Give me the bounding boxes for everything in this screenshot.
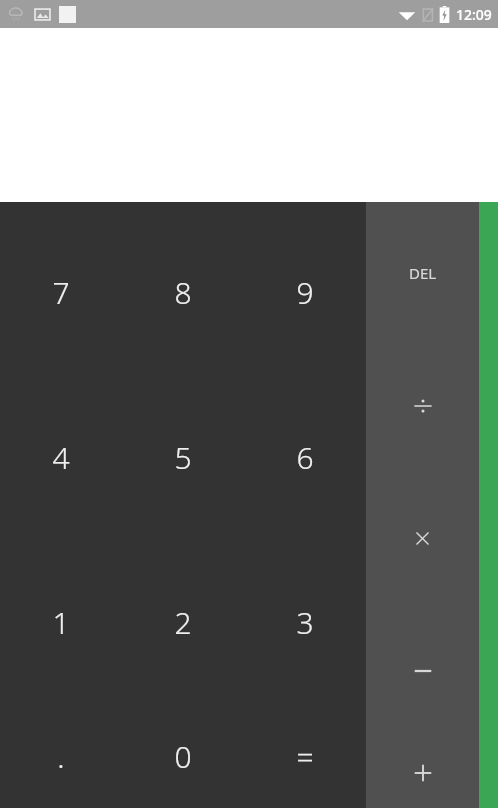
button[interactable]: 1 [0, 540, 122, 705]
staticText: 7 [52, 272, 70, 313]
staticText: . [57, 736, 65, 777]
staticText: 0 [174, 736, 192, 777]
button[interactable]: = [244, 705, 366, 808]
button[interactable]: Multiply [366, 472, 479, 605]
button[interactable]: 3 [244, 540, 366, 705]
button[interactable]: Minus [366, 605, 479, 737]
button[interactable]: Plus [366, 737, 479, 808]
staticText: 8 [174, 272, 192, 313]
button[interactable]: 8 [122, 210, 244, 375]
staticText: 6 [296, 437, 314, 478]
button[interactable]: 0 [122, 705, 244, 808]
button[interactable]: 5 [122, 375, 244, 540]
button[interactable]: 9 [244, 210, 366, 375]
staticText: 2 [174, 602, 192, 643]
button[interactable]: 2 [122, 540, 244, 705]
staticText: = [296, 736, 314, 777]
staticText: 4 [52, 437, 70, 478]
button[interactable]: Divide [366, 339, 479, 472]
button[interactable]: 7 [0, 210, 122, 375]
staticText: 3 [296, 602, 314, 643]
button[interactable]: Delete [366, 207, 479, 339]
staticText: 1 [52, 602, 70, 643]
staticText: 9 [296, 272, 314, 313]
staticText: DEL [409, 263, 437, 283]
staticText: 5 [174, 437, 192, 478]
staticText: 12:09 [456, 5, 492, 24]
button[interactable]: 4 [0, 375, 122, 540]
button[interactable]: 6 [244, 375, 366, 540]
button[interactable]: . [0, 705, 122, 808]
